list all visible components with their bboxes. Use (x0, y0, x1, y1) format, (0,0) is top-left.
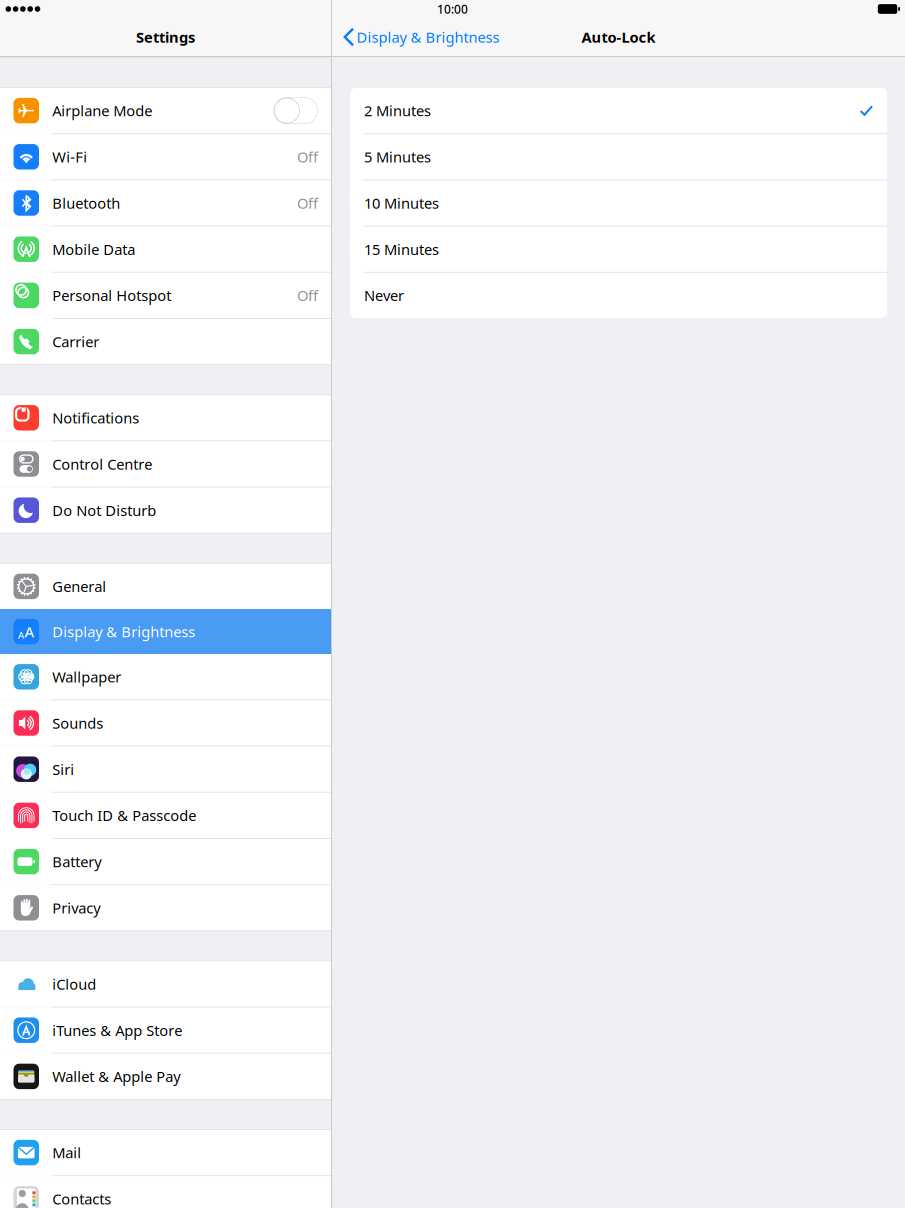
button[interactable]: Display & Brightness (332, 18, 510, 56)
staticText: Auto-Lock (581, 27, 655, 47)
staticText: iCloud (52, 974, 96, 994)
staticText: iTunes & App Store (52, 1020, 182, 1040)
button[interactable]: 15 Minutes (350, 227, 887, 272)
button[interactable]: Personal Hotspot (0, 273, 331, 318)
staticText: Control Centre (52, 454, 152, 474)
staticText: Wallet & Apple Pay (52, 1067, 180, 1086)
button[interactable]: Touch ID & Passcode (0, 793, 331, 838)
staticText: Bluetooth (52, 193, 120, 213)
staticText: Battery (52, 852, 101, 871)
staticText: A (18, 629, 24, 641)
button[interactable]: 2 Minutes (350, 88, 887, 133)
staticText: Settings (136, 27, 195, 47)
button[interactable]: Siri (0, 747, 331, 792)
button[interactable]: Battery (0, 839, 331, 884)
button[interactable]: Control Centre (0, 441, 331, 487)
staticText: Airplane Mode (52, 101, 152, 120)
staticText: Off (297, 286, 318, 305)
button[interactable]: Wallet & Apple Pay (0, 1054, 331, 1099)
staticText: Touch ID & Passcode (52, 806, 196, 825)
button[interactable]: 10 Minutes (350, 180, 887, 226)
staticText: A (24, 622, 34, 641)
staticText: Off (297, 147, 318, 167)
button[interactable]: Carrier (0, 319, 331, 364)
staticText: Siri (52, 759, 74, 779)
button[interactable]: Bluetooth (0, 180, 331, 226)
staticText: Display & Brightness (357, 27, 500, 47)
staticText: Display & Brightness (52, 622, 195, 641)
staticText: Off (297, 193, 318, 213)
staticText: 10:00 (437, 1, 468, 17)
staticText: Do Not Disturb (52, 500, 156, 520)
staticText: 2 Minutes (364, 101, 431, 120)
staticText: Carrier (52, 332, 99, 351)
staticText: Contacts (52, 1189, 111, 1208)
staticText: 10 Minutes (364, 193, 439, 213)
staticText: General (52, 577, 106, 596)
button[interactable]: Wi-Fi (0, 134, 331, 179)
button[interactable]: Wallpaper (0, 654, 331, 699)
staticText: 5 Minutes (364, 147, 431, 167)
button[interactable]: iCloud (0, 961, 331, 1007)
staticText: Wallpaper (52, 667, 121, 687)
button[interactable]: Do Not Disturb (0, 488, 331, 533)
button[interactable]: Contacts (0, 1176, 331, 1208)
button[interactable]: 5 Minutes (350, 134, 887, 179)
button[interactable]: iTunes & App Store (0, 1008, 331, 1053)
staticText: Mobile Data (52, 239, 135, 259)
button[interactable]: Never (350, 273, 887, 318)
staticText: 15 Minutes (364, 239, 439, 259)
staticText: Notifications (52, 408, 139, 428)
button[interactable]: Mobile Data (0, 227, 331, 272)
button[interactable]: Notifications (0, 395, 331, 440)
button[interactable]: Sounds (0, 700, 331, 746)
staticText: Never (364, 286, 404, 305)
staticText: Mail (52, 1143, 81, 1162)
staticText: Wi-Fi (52, 147, 87, 167)
button[interactable]: Privacy (0, 885, 331, 930)
staticText: Sounds (52, 713, 103, 733)
button[interactable]: Mail (0, 1130, 331, 1175)
button[interactable]: General (0, 564, 331, 609)
button[interactable]: A (0, 609, 331, 654)
button[interactable]: Airplane Mode (0, 88, 331, 133)
staticText: Privacy (52, 898, 100, 918)
staticText: Personal Hotspot (52, 286, 171, 305)
